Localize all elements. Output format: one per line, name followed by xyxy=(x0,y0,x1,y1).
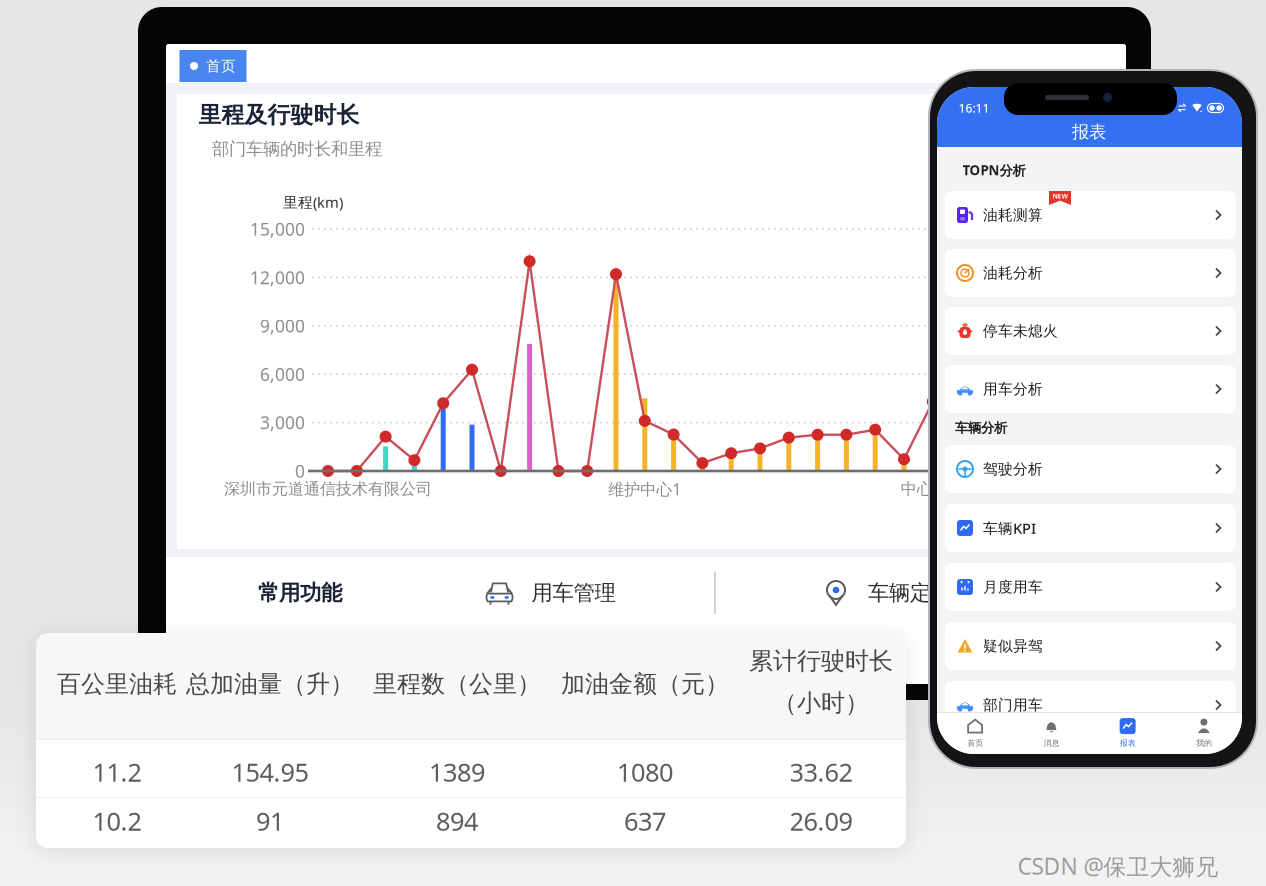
staticText: 91 xyxy=(256,804,284,838)
staticText: 停车未熄火 xyxy=(983,322,1058,340)
button[interactable]: 停车未熄火 xyxy=(945,307,1236,355)
staticText: 12,000 xyxy=(250,266,305,289)
button[interactable]: 月度用车 xyxy=(945,563,1236,611)
staticText: 里程数（公里） xyxy=(373,669,541,699)
staticText: CSDN @保卫大狮兄 xyxy=(1017,851,1218,881)
button[interactable]: 用车分析 xyxy=(945,365,1236,413)
staticText: 油耗分析 xyxy=(983,264,1043,282)
staticText: 用车管理 xyxy=(531,580,615,606)
staticText: 我的 xyxy=(1196,738,1212,748)
staticText: 月度用车 xyxy=(983,578,1043,596)
staticText: 154.95 xyxy=(231,755,308,789)
staticText: 首页 xyxy=(206,57,236,75)
button[interactable]: 报表 xyxy=(1089,718,1166,748)
button[interactable]: 首页 xyxy=(937,718,1013,748)
staticText: 报表 xyxy=(1072,121,1106,143)
staticText: 11.2 xyxy=(92,755,141,789)
staticText: 总加油量（升） xyxy=(186,669,354,699)
staticText: 维护中心1 xyxy=(608,478,681,500)
staticText: 26.09 xyxy=(789,804,852,838)
button[interactable]: 部门用车 xyxy=(945,681,1236,729)
staticText: 加油金额（元） xyxy=(561,669,729,699)
staticText: 累计行驶时长 xyxy=(749,646,893,676)
staticText: 车辆KPI xyxy=(983,518,1036,538)
staticText: TOPN分析 xyxy=(962,161,1025,179)
staticText: 用车分析 xyxy=(983,380,1043,398)
staticText: 1080 xyxy=(617,755,673,789)
staticText: 报表 xyxy=(1120,738,1136,748)
staticText: 15,000 xyxy=(250,217,305,240)
staticText: 里程及行驶时长 xyxy=(198,101,359,129)
staticText: 0 xyxy=(295,459,305,482)
button[interactable]: 油耗分析 xyxy=(945,249,1236,297)
staticText: 3,000 xyxy=(260,411,305,434)
staticText: 百公里油耗 xyxy=(57,669,177,699)
staticText: 33.62 xyxy=(789,755,852,789)
button[interactable]: 用车管理 xyxy=(455,578,645,608)
staticText: 车辆分析 xyxy=(955,420,1007,436)
staticText: 里程(km) xyxy=(283,192,343,212)
staticText: 中心 xyxy=(901,479,933,499)
staticText: 637 xyxy=(624,804,666,838)
staticText: NEW xyxy=(1052,192,1067,200)
staticText: 16:11 xyxy=(958,100,989,116)
button[interactable]: 车辆定 xyxy=(786,578,966,608)
staticText: 1389 xyxy=(429,755,485,789)
button[interactable]: 消息 xyxy=(1013,718,1089,748)
staticText: 消息 xyxy=(1043,738,1059,748)
button[interactable]: 首页 xyxy=(179,50,246,82)
staticText: 部门车辆的时长和里程 xyxy=(212,138,382,160)
staticText: 894 xyxy=(436,804,478,838)
button[interactable]: 我的 xyxy=(1166,718,1242,748)
staticText: 车辆定 xyxy=(868,580,931,606)
staticText: 9,000 xyxy=(260,314,305,337)
staticText: 首页 xyxy=(967,738,983,748)
staticText: （小时） xyxy=(773,688,869,718)
button[interactable]: 车辆KPI xyxy=(945,504,1236,552)
staticText: 部门用车 xyxy=(983,696,1043,714)
staticText: 6,000 xyxy=(260,363,305,386)
staticText: 10.2 xyxy=(92,804,141,838)
staticText: 疑似异驾 xyxy=(983,637,1043,655)
staticText: 驾驶分析 xyxy=(983,460,1043,478)
button[interactable]: 油耗测算 xyxy=(945,191,1236,239)
button[interactable]: 疑似异驾 xyxy=(945,622,1236,670)
button[interactable]: 驾驶分析 xyxy=(945,445,1236,493)
staticText: 油耗测算 xyxy=(983,206,1043,224)
staticText: 深圳市元道通信技术有限公司 xyxy=(224,479,432,499)
staticText: 常用功能 xyxy=(258,580,342,606)
